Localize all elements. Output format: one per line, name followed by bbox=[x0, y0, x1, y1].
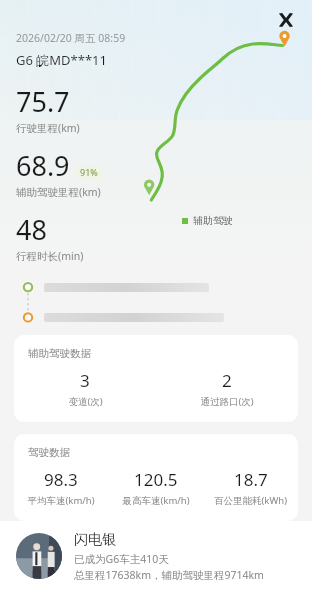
staticText: 平均车速(km/h) bbox=[27, 494, 95, 507]
staticText: 75.7 bbox=[16, 83, 70, 120]
staticText: G6 皖MD***11 bbox=[16, 51, 107, 69]
button[interactable]: 闪电银 bbox=[0, 521, 312, 591]
staticText: 行驶里程(km) bbox=[16, 121, 80, 135]
staticText: 120.5 bbox=[134, 468, 178, 491]
staticText: 通过路口(次) bbox=[200, 395, 254, 408]
staticText: 最高车速(km/h) bbox=[122, 494, 190, 507]
button[interactable]: 驾驶数据 bbox=[14, 434, 298, 521]
staticText: 辅助驾驶 bbox=[193, 214, 233, 227]
staticText: 辅助驾驶里程(km) bbox=[16, 185, 101, 199]
button[interactable]: Close bbox=[270, 4, 302, 36]
button[interactable]: 辅助驾驶数据 bbox=[14, 335, 298, 422]
staticText: 闪电银 bbox=[74, 531, 116, 549]
staticText: 驾驶数据 bbox=[28, 446, 70, 459]
staticText: 68.9 bbox=[16, 147, 70, 184]
staticText: 百公里能耗(kWh) bbox=[214, 494, 287, 507]
staticText: 辅助驾驶数据 bbox=[28, 347, 91, 360]
staticText: 已成为G6车主410天 bbox=[74, 552, 169, 566]
staticText: 91% bbox=[80, 166, 98, 178]
staticText: 2026/02/20 周五 08:59 bbox=[16, 31, 126, 45]
staticText: 98.3 bbox=[44, 468, 78, 491]
staticText: 2 bbox=[222, 369, 232, 392]
staticText: 18.7 bbox=[234, 468, 268, 491]
staticText: 行程时长(min) bbox=[16, 249, 84, 263]
staticText: 3 bbox=[80, 369, 90, 392]
staticText: 变道(次) bbox=[68, 395, 103, 408]
staticText: 总里程17638km，辅助驾驶里程9714km bbox=[74, 568, 264, 582]
staticText: 48 bbox=[16, 211, 47, 248]
